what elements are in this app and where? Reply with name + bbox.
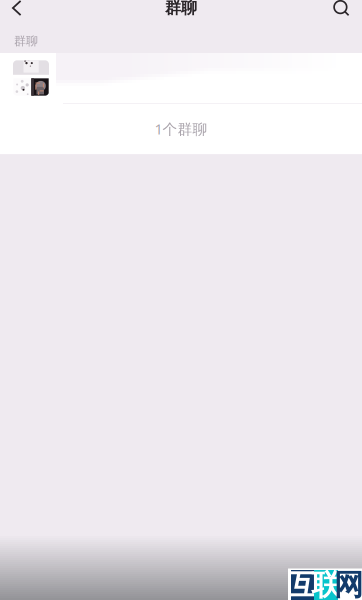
button[interactable]: Back [0, 0, 46, 16]
staticText: 群聊 [165, 0, 197, 18]
staticText: 互 [288, 567, 317, 600]
staticText: 1个群聊 [154, 119, 207, 139]
button[interactable] [0, 53, 362, 103]
staticText: 群聊 [14, 34, 38, 48]
staticText: 联 [311, 567, 340, 600]
button[interactable]: Search [316, 0, 362, 16]
staticText: 网 [334, 567, 362, 600]
